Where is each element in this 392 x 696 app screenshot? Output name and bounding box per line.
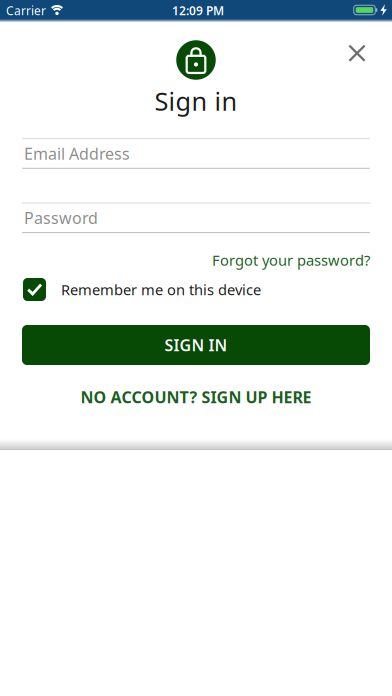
- staticText: 12:09 PM: [172, 2, 224, 18]
- button[interactable]: Forgot your password?: [212, 250, 370, 270]
- staticText: Password: [24, 207, 98, 228]
- button[interactable]: NO ACCOUNT? SIGN UP HERE: [80, 386, 311, 408]
- staticText: Sign in: [154, 84, 237, 118]
- staticText: NO ACCOUNT? SIGN UP HERE: [80, 386, 311, 408]
- button[interactable]: Remember me on this device: [23, 278, 261, 301]
- staticText: Carrier: [6, 2, 46, 18]
- staticText: SIGN IN: [164, 334, 227, 356]
- button[interactable]: Password: [22, 202, 370, 233]
- button[interactable]: Email Address: [22, 138, 370, 169]
- button[interactable]: [348, 44, 366, 62]
- staticText: Remember me on this device: [61, 280, 261, 299]
- button[interactable]: SIGN IN: [22, 325, 370, 365]
- staticText: Email Address: [24, 143, 130, 164]
- staticText: Forgot your password?: [212, 250, 370, 270]
